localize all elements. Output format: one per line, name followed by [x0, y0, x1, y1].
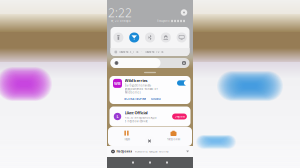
staticText: Вы будете получать уведомления только от… [124, 84, 157, 94]
staticText: бесшумно [157, 19, 170, 23]
staticText: Wildberries [124, 78, 147, 83]
staticText: Настройки [166, 137, 180, 141]
button[interactable]: Bluetooth [142, 27, 158, 48]
staticText: Изменить: каждая кнопка [135, 150, 168, 153]
button[interactable]: Пауза [111, 130, 142, 141]
staticText: Память: 3,1 ГБ [119, 50, 139, 54]
staticText: 2:22 [108, 4, 132, 20]
button[interactable]: Flashlight [110, 27, 126, 48]
staticText: вт, 20 января [111, 19, 131, 23]
button[interactable]: Clear all notifications [144, 136, 154, 146]
staticText: Открыть [174, 115, 184, 118]
button[interactable]: Открыть [172, 113, 187, 119]
button[interactable]: Home [141, 157, 158, 168]
button[interactable]: ВСЕ КАТЕГОРИИ [124, 97, 146, 101]
button[interactable]: Recents [158, 157, 175, 168]
staticText: ГОТОВО [151, 97, 161, 101]
staticText: ВСЕ КАТЕГОРИИ [124, 97, 146, 101]
staticText: Что-то интересное ждёт в первом сейчас [124, 116, 156, 123]
button[interactable]: ГОТОВО [151, 97, 161, 101]
staticText: L [116, 114, 118, 119]
button[interactable]: Настройки [107, 146, 193, 157]
staticText: Пауза [123, 137, 129, 141]
button[interactable]: Settings [180, 9, 187, 16]
staticText: WB [114, 81, 121, 86]
button[interactable]: Do not disturb [158, 27, 174, 48]
button[interactable]: Wi-Fi [126, 27, 142, 48]
staticText: Likee Official [124, 110, 147, 115]
button[interactable]: Screen cast [174, 27, 189, 48]
button[interactable]: Back [124, 157, 141, 168]
staticText: A [183, 61, 185, 65]
button[interactable]: Настройки [158, 130, 189, 141]
staticText: Настройки [116, 150, 132, 153]
staticText: Память: 10 ГБ [145, 50, 164, 54]
staticText: · [141, 50, 142, 54]
